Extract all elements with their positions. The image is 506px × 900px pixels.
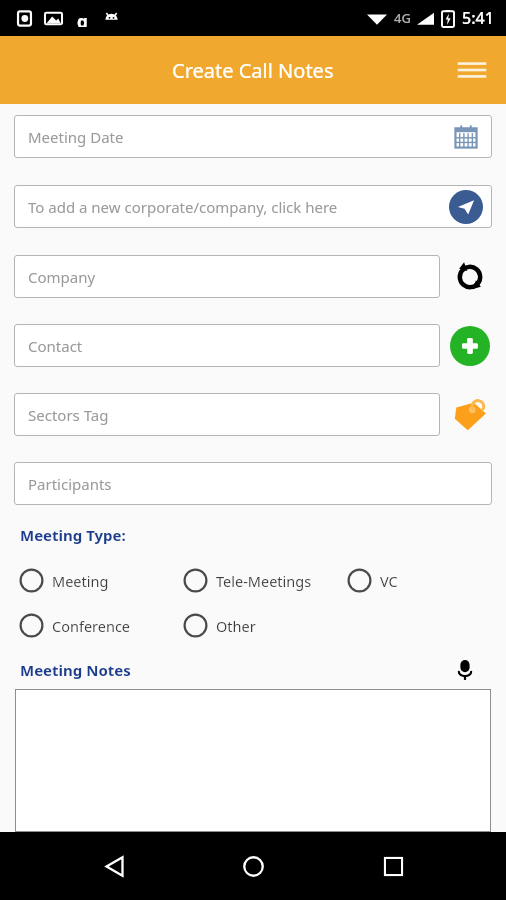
staticText: Meeting Date xyxy=(28,127,124,147)
button[interactable] xyxy=(15,689,491,832)
staticText: 5:41 xyxy=(462,7,494,29)
staticText: Participants xyxy=(28,474,112,494)
button[interactable]: Company xyxy=(14,255,440,298)
button[interactable]: Recent apps xyxy=(367,840,419,892)
button[interactable]: Tele-Meetings xyxy=(183,568,312,593)
staticText: Meeting xyxy=(52,571,109,591)
button[interactable]: Contact xyxy=(14,324,440,367)
staticText: Other xyxy=(216,616,256,636)
button[interactable]: Voice input xyxy=(450,657,480,683)
button[interactable]: Sectors Tag xyxy=(14,393,440,436)
button[interactable]: Choose sector tag xyxy=(448,393,492,436)
button[interactable]: Refresh companies xyxy=(448,255,492,298)
staticText: Company xyxy=(28,267,96,287)
button[interactable]: Add corporate xyxy=(448,189,484,225)
button[interactable]: Conference xyxy=(19,613,131,638)
button[interactable]: VC xyxy=(347,568,398,593)
button[interactable]: Meeting Date xyxy=(14,115,492,158)
staticText: Tele-Meetings xyxy=(216,571,312,591)
button[interactable]: Meeting xyxy=(19,568,109,593)
staticText: VC xyxy=(380,571,398,591)
staticText: Contact xyxy=(28,336,83,356)
staticText: To add a new corporate/company, click he… xyxy=(28,197,338,217)
staticText: Conference xyxy=(52,616,131,636)
button[interactable]: Pick date xyxy=(450,121,482,153)
button[interactable]: Back xyxy=(88,840,140,892)
button[interactable]: Other xyxy=(183,613,256,638)
staticText: 4G xyxy=(394,9,411,27)
staticText: Sectors Tag xyxy=(28,405,109,425)
button[interactable]: Participants xyxy=(14,462,492,505)
staticText: Meeting Notes xyxy=(20,660,131,680)
staticText: g xyxy=(77,10,88,27)
button[interactable]: Menu xyxy=(450,48,494,92)
button[interactable]: Home xyxy=(227,840,279,892)
staticText: Meeting Type: xyxy=(20,525,126,545)
button[interactable]: Add contact xyxy=(448,324,492,367)
staticText: Create Call Notes xyxy=(172,57,334,84)
button[interactable]: To add a new corporate/company, click he… xyxy=(14,185,492,228)
